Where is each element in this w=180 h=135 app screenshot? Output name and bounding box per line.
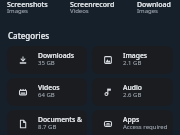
staticText: Images — [7, 7, 28, 15]
staticText: Access required — [123, 123, 168, 131]
button[interactable]: Download — [137, 0, 180, 18]
button[interactable]: Screenrecord — [70, 0, 128, 18]
staticText: 64 GB — [38, 91, 55, 99]
staticText: 8.7 GB — [38, 123, 57, 131]
button[interactable]: Audio — [92, 78, 173, 106]
staticText: Videos — [38, 83, 60, 92]
staticText: Audio — [123, 83, 142, 92]
staticText: Screenshots — [7, 0, 48, 10]
button[interactable]: Documents & Others — [7, 110, 87, 135]
staticText: Videos — [70, 7, 89, 15]
staticText: Downloads — [38, 51, 75, 60]
staticText: Documents & Others — [38, 115, 84, 124]
button[interactable]: Images — [92, 46, 173, 74]
button[interactable]: Downloads — [7, 46, 87, 74]
staticText: Download — [137, 0, 171, 10]
staticText: Screenrecord — [70, 0, 115, 10]
staticText: Categories — [8, 30, 50, 41]
staticText: 2.6 GB — [123, 91, 142, 99]
staticText: 2.1 GB — [123, 59, 142, 67]
staticText: 35 GB — [38, 59, 55, 67]
staticText: Images — [123, 51, 148, 60]
button[interactable]: Apps — [92, 110, 173, 135]
button[interactable]: Videos — [7, 78, 87, 106]
staticText: Images — [137, 7, 158, 15]
staticText: Apps — [123, 115, 140, 124]
button[interactable]: Screenshots — [7, 0, 65, 18]
